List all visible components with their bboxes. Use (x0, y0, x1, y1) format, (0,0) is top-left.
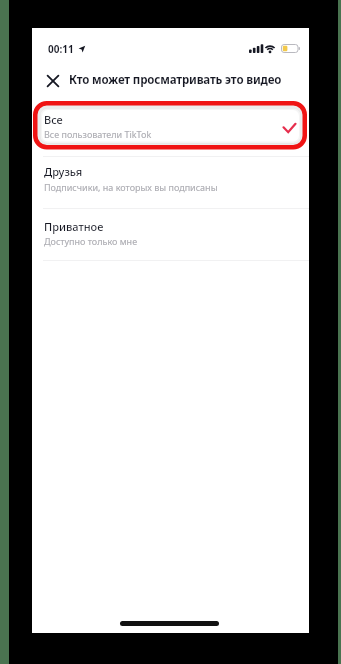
staticText: Доступно только мне (44, 235, 138, 247)
button[interactable]: Друзья (32, 157, 309, 209)
staticText: Кто может просматривать это видео (69, 72, 282, 88)
button[interactable]: Приватное (32, 209, 309, 260)
staticText: Друзья (44, 164, 83, 179)
button[interactable] (45, 73, 61, 89)
staticText: Все пользователи TikTok (44, 128, 152, 140)
staticText: Все (44, 112, 63, 127)
button[interactable]: Все (32, 101, 309, 150)
staticText: Приватное (44, 219, 104, 234)
staticText: 00:11 (48, 42, 74, 56)
staticText: Подписчики, на которых вы подписаны (44, 181, 218, 193)
